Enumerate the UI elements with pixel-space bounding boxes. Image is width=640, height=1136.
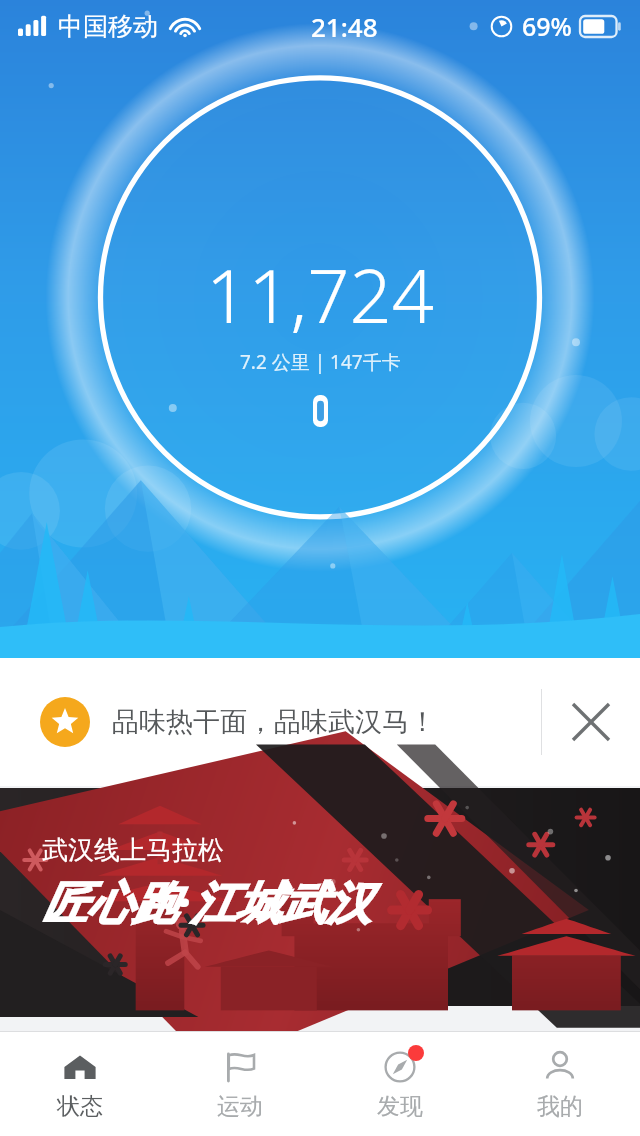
- staticText: 运动: [217, 1092, 263, 1121]
- staticText: 品味热干面，品味武汉马！: [112, 705, 541, 739]
- button[interactable]: 发现: [320, 1032, 480, 1136]
- button[interactable]: Close promotion: [542, 658, 640, 786]
- button[interactable]: 武汉线上马拉松: [0, 788, 640, 1006]
- staticText: 11,724: [206, 244, 434, 345]
- staticText: 发现: [377, 1092, 423, 1121]
- staticText: 7.2 公里 | 147千卡: [240, 349, 401, 375]
- staticText: 匠心跑·江城武汉: [42, 871, 371, 932]
- staticText: 69%: [522, 9, 572, 43]
- staticText: 中国移动: [58, 11, 158, 42]
- staticText: 武汉线上马拉松: [42, 834, 224, 867]
- button[interactable]: 运动: [160, 1032, 320, 1136]
- staticText: 我的: [537, 1092, 583, 1121]
- staticText: 21:48: [311, 9, 378, 44]
- button[interactable]: 状态: [0, 1032, 160, 1136]
- button[interactable]: 我的: [480, 1032, 640, 1136]
- staticText: 状态: [57, 1092, 103, 1121]
- button[interactable]: 品味热干面，品味武汉马！: [0, 658, 640, 786]
